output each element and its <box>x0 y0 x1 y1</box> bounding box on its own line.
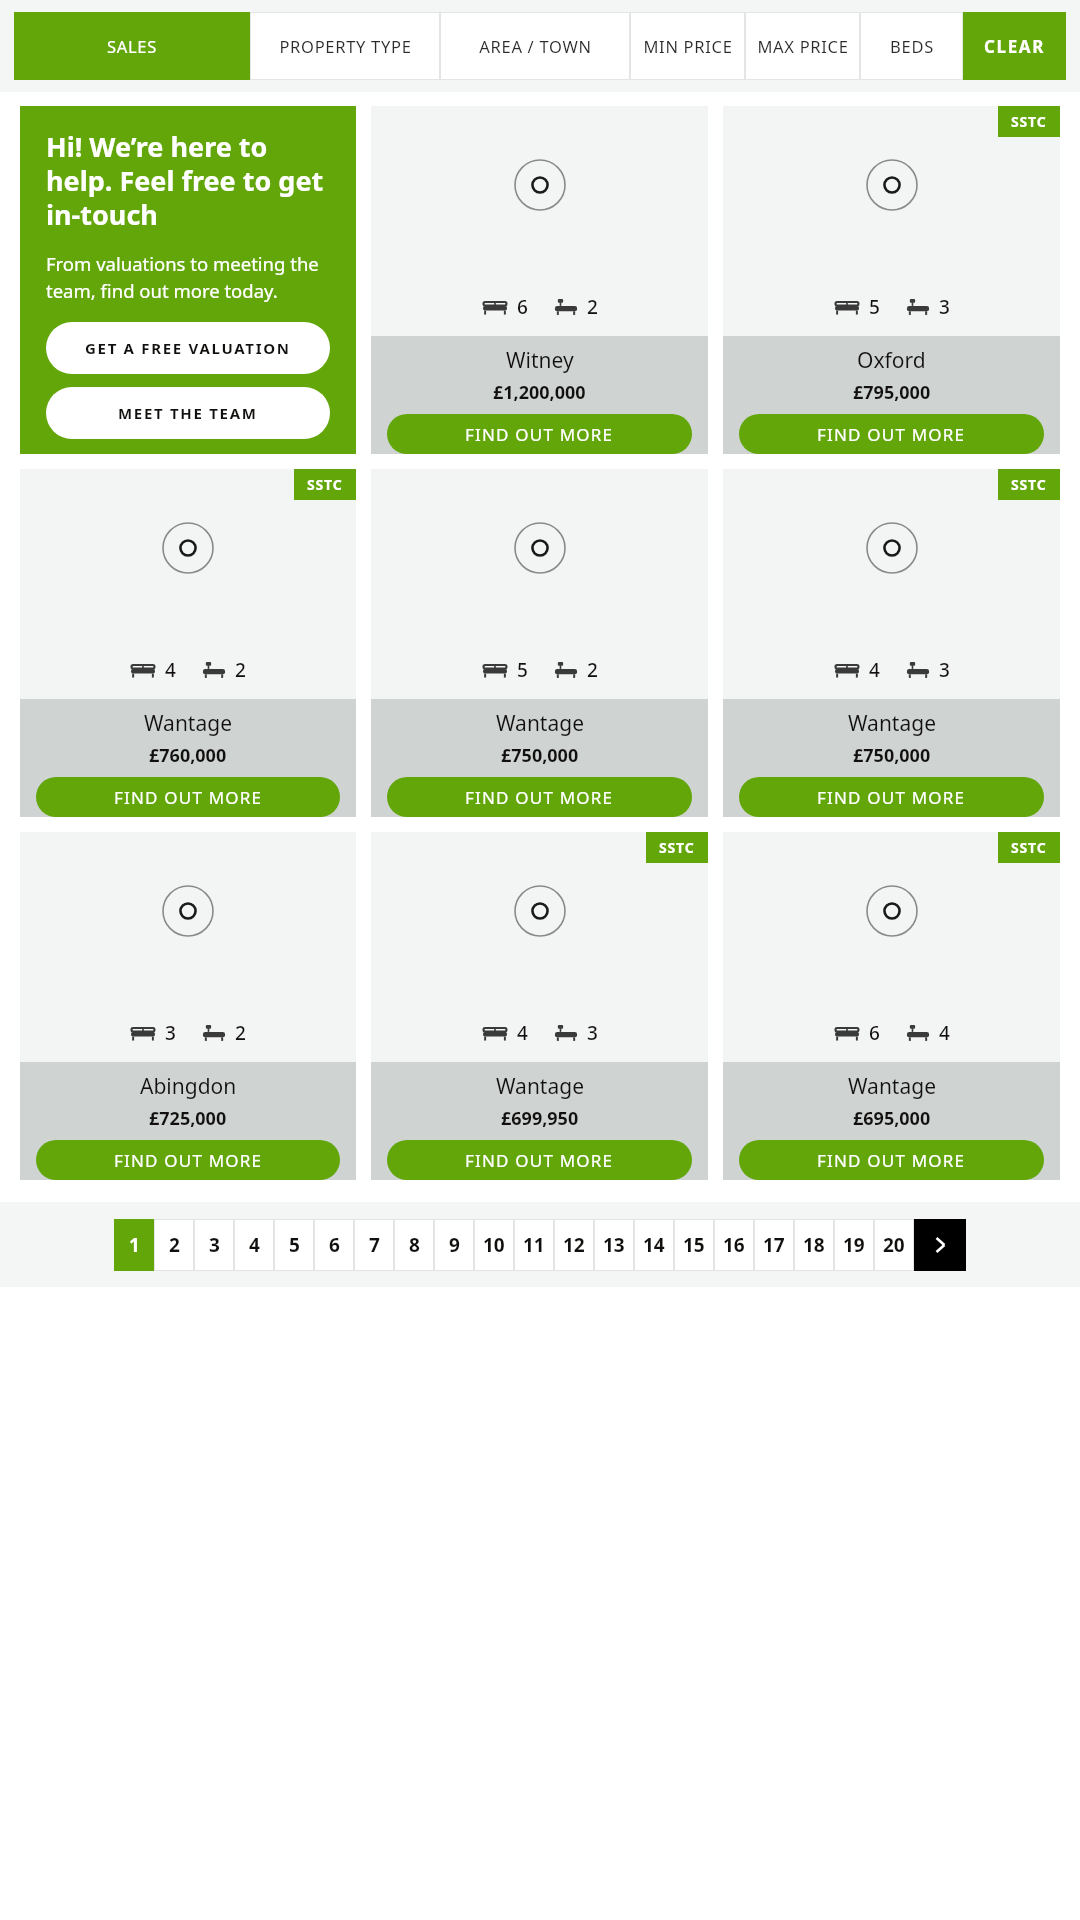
button[interactable]: 7 <box>354 1219 394 1271</box>
staticText: 4 <box>249 1232 260 1258</box>
staticText: SSTC <box>1011 112 1047 131</box>
button[interactable]: 6 <box>314 1219 354 1271</box>
staticText: 4 <box>869 657 880 683</box>
staticText: 8 <box>409 1232 420 1258</box>
staticText: Abingdon <box>140 1072 237 1101</box>
staticText: SSTC <box>307 475 343 494</box>
staticText: 1 <box>129 1232 140 1258</box>
button[interactable]: FIND OUT MORE <box>739 777 1044 817</box>
button[interactable]: PROPERTY TYPE <box>250 12 440 80</box>
button[interactable]: BEDS <box>860 12 963 80</box>
staticText: 6 <box>329 1232 340 1258</box>
button[interactable]: 9 <box>434 1219 474 1271</box>
button[interactable]: 17 <box>754 1219 794 1271</box>
button[interactable]: 15 <box>674 1219 714 1271</box>
button[interactable]: Hi! We’re here to help. Feel free to get… <box>20 106 356 454</box>
staticText: 5 <box>289 1232 300 1258</box>
staticText: Wantage <box>848 709 936 738</box>
button[interactable]: 20 <box>874 1219 914 1271</box>
staticText: 2 <box>587 294 598 320</box>
staticText: PROPERTY TYPE <box>279 35 412 57</box>
staticText: £760,000 <box>149 743 227 768</box>
staticText: 3 <box>165 1020 176 1046</box>
button[interactable]: SSTC <box>371 832 708 1180</box>
staticText: 14 <box>643 1232 665 1258</box>
button[interactable]: SSTC <box>723 106 1060 454</box>
staticText: £725,000 <box>149 1106 227 1131</box>
button[interactable]: 3 <box>194 1219 234 1271</box>
staticText: 17 <box>763 1232 785 1258</box>
button[interactable]: 5 <box>371 469 708 817</box>
button[interactable]: SSTC <box>20 469 356 817</box>
staticText: 10 <box>483 1232 505 1258</box>
button[interactable]: Next page <box>914 1219 966 1271</box>
staticText: 5 <box>869 294 880 320</box>
button[interactable]: 8 <box>394 1219 434 1271</box>
staticText: 5 <box>517 657 528 683</box>
button[interactable]: FIND OUT MORE <box>387 414 692 454</box>
staticText: Witney <box>506 346 574 375</box>
staticText: FIND OUT MORE <box>114 786 263 809</box>
button[interactable]: SALES <box>14 12 250 80</box>
staticText: 6 <box>517 294 528 320</box>
button[interactable]: 16 <box>714 1219 754 1271</box>
button[interactable]: 18 <box>794 1219 834 1271</box>
button[interactable]: MIN PRICE <box>630 12 745 80</box>
staticText: SALES <box>107 35 157 57</box>
staticText: SSTC <box>1011 838 1047 857</box>
button[interactable]: FIND OUT MORE <box>387 777 692 817</box>
staticText: FIND OUT MORE <box>465 1149 614 1172</box>
staticText: 2 <box>235 657 246 683</box>
staticText: Wantage <box>496 1072 584 1101</box>
button[interactable]: MEET THE TEAM <box>46 387 330 439</box>
staticText: 19 <box>843 1232 865 1258</box>
button[interactable]: GET A FREE VALUATION <box>46 322 330 374</box>
button[interactable]: MAX PRICE <box>745 12 860 80</box>
button[interactable]: AREA / TOWN <box>440 12 630 80</box>
button[interactable]: FIND OUT MORE <box>36 1140 340 1180</box>
button[interactable]: 1 <box>114 1219 154 1271</box>
button[interactable]: FIND OUT MORE <box>739 414 1044 454</box>
staticText: 6 <box>869 1020 880 1046</box>
staticText: FIND OUT MORE <box>465 786 614 809</box>
staticText: 16 <box>723 1232 745 1258</box>
button[interactable]: SSTC <box>723 469 1060 817</box>
staticText: MAX PRICE <box>757 35 849 57</box>
staticText: £695,000 <box>853 1106 931 1131</box>
staticText: Wantage <box>848 1072 936 1101</box>
staticText: Wantage <box>496 709 584 738</box>
staticText: FIND OUT MORE <box>817 423 966 446</box>
staticText: 2 <box>235 1020 246 1046</box>
staticText: MEET THE TEAM <box>118 403 258 423</box>
button[interactable]: 6 <box>371 106 708 454</box>
staticText: £750,000 <box>853 743 931 768</box>
button[interactable]: 13 <box>594 1219 634 1271</box>
button[interactable]: 14 <box>634 1219 674 1271</box>
button[interactable]: SSTC <box>723 832 1060 1180</box>
staticText: GET A FREE VALUATION <box>85 338 291 358</box>
staticText: AREA / TOWN <box>479 35 592 57</box>
staticText: 2 <box>169 1232 180 1258</box>
button[interactable]: FIND OUT MORE <box>387 1140 692 1180</box>
staticText: 3 <box>587 1020 598 1046</box>
staticText: £699,950 <box>501 1106 579 1131</box>
button[interactable]: 19 <box>834 1219 874 1271</box>
button[interactable]: FIND OUT MORE <box>36 777 340 817</box>
button[interactable]: 2 <box>154 1219 194 1271</box>
button[interactable]: CLEAR <box>963 12 1066 80</box>
staticText: Oxford <box>857 346 926 375</box>
button[interactable]: 3 <box>20 832 356 1180</box>
staticText: 13 <box>603 1232 625 1258</box>
staticText: MIN PRICE <box>643 35 733 57</box>
staticText: Hi! We’re here to help. Feel free to get… <box>46 128 330 233</box>
button[interactable]: 5 <box>274 1219 314 1271</box>
staticText: CLEAR <box>984 35 1045 58</box>
button[interactable]: 10 <box>474 1219 514 1271</box>
button[interactable]: 4 <box>234 1219 274 1271</box>
staticText: Wantage <box>144 709 232 738</box>
button[interactable]: 12 <box>554 1219 594 1271</box>
button[interactable]: 11 <box>514 1219 554 1271</box>
staticText: 7 <box>369 1232 380 1258</box>
button[interactable]: FIND OUT MORE <box>739 1140 1044 1180</box>
staticText: FIND OUT MORE <box>817 786 966 809</box>
